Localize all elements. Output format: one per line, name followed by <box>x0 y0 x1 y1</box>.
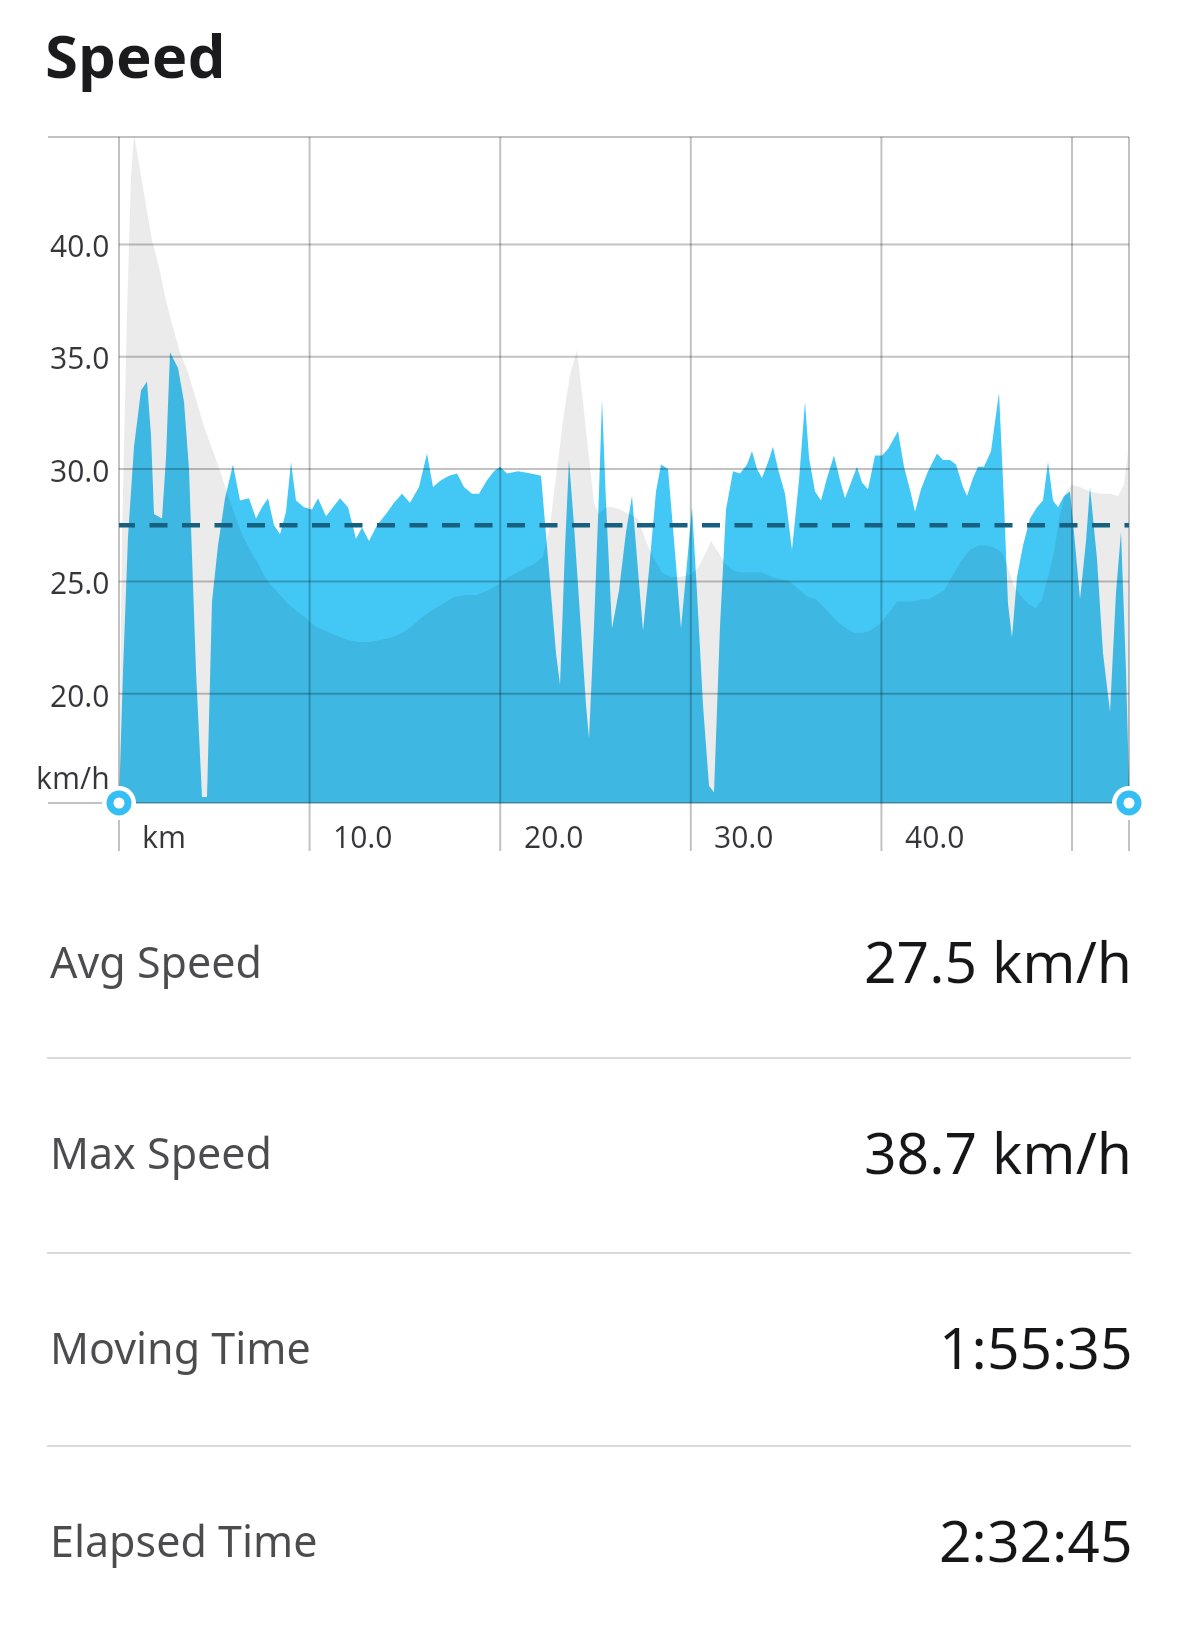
staticText: 40.0 <box>905 816 965 857</box>
staticText: Elapsed Time <box>50 1511 318 1570</box>
button[interactable]: Moving Time <box>0 1252 1179 1442</box>
staticText: 38.7 km/h <box>864 1113 1133 1191</box>
staticText: 20.0 <box>524 816 584 857</box>
staticText: 1:55:35 <box>939 1308 1133 1386</box>
staticText: Moving Time <box>50 1318 311 1377</box>
staticText: Avg Speed <box>50 932 262 991</box>
staticText: km <box>142 816 187 857</box>
staticText: 27.5 km/h <box>864 922 1133 1000</box>
staticText: 25.0 <box>50 562 110 603</box>
button[interactable]: Avg Speed <box>0 866 1179 1056</box>
button[interactable]: Max Speed <box>0 1057 1179 1247</box>
staticText: 10.0 <box>333 816 393 857</box>
staticText: 30.0 <box>50 450 110 491</box>
staticText: 35.0 <box>50 337 110 378</box>
staticText: km/h <box>36 757 110 798</box>
staticText: 30.0 <box>714 816 774 857</box>
button[interactable]: Elapsed Time <box>0 1445 1179 1633</box>
staticText: Max Speed <box>50 1123 273 1182</box>
staticText: 20.0 <box>50 675 110 716</box>
staticText: Speed <box>45 14 226 96</box>
staticText: 2:32:45 <box>939 1501 1133 1579</box>
staticText: 40.0 <box>50 225 110 266</box>
